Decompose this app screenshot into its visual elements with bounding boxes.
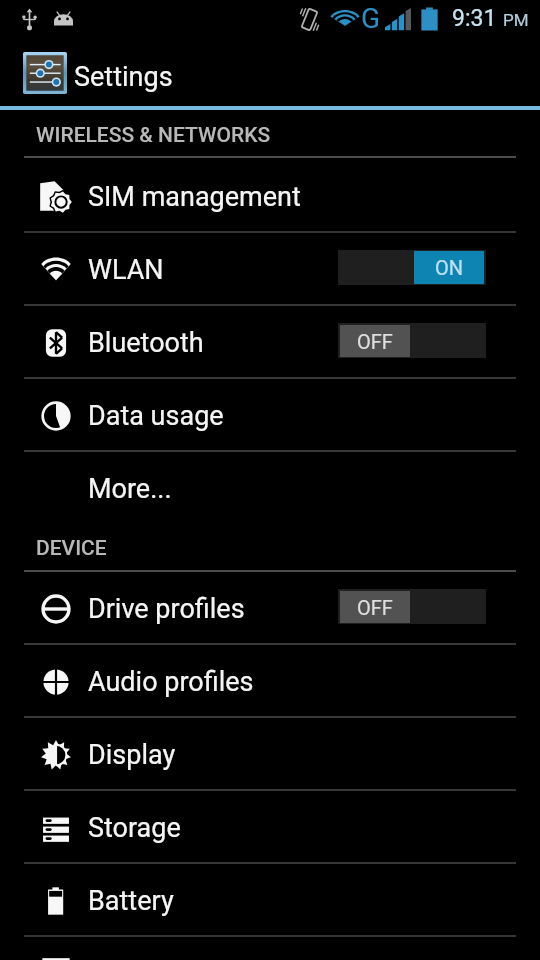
button[interactable]: More... xyxy=(0,452,540,525)
button[interactable]: Bluetooth xyxy=(0,306,540,379)
button[interactable]: Drive profiles xyxy=(0,572,540,645)
staticText: DEVICE xyxy=(36,536,107,561)
staticText: SIM management xyxy=(88,181,301,213)
button[interactable]: Display xyxy=(0,718,540,791)
other: Vibrate xyxy=(297,7,321,32)
button[interactable]: Apps xyxy=(0,937,540,960)
staticText: Drive profiles xyxy=(88,593,245,625)
staticText: Bluetooth xyxy=(88,327,204,359)
staticText: Audio profiles xyxy=(88,666,254,698)
staticText: WIRELESS & NETWORKS xyxy=(36,123,271,148)
button[interactable]: Settings xyxy=(0,38,540,106)
staticText: Settings xyxy=(74,61,173,93)
staticText: G xyxy=(361,2,381,35)
staticText: Data usage xyxy=(88,400,224,432)
button[interactable]: Storage xyxy=(0,791,540,864)
button[interactable]: Toggle on xyxy=(338,250,486,285)
staticText: WLAN xyxy=(88,254,164,286)
button[interactable]: SIM management xyxy=(0,160,540,233)
staticText: Storage xyxy=(88,812,181,844)
button[interactable]: Audio profiles xyxy=(0,645,540,718)
staticText: PM xyxy=(503,10,529,30)
other: Wi-Fi xyxy=(327,6,363,31)
staticText: OFF xyxy=(357,330,393,353)
button[interactable]: Battery xyxy=(0,864,540,937)
button[interactable]: Toggle off xyxy=(338,323,486,358)
other: Mobile signal xyxy=(385,8,411,31)
staticText: ON xyxy=(435,256,464,279)
staticText: Battery xyxy=(88,885,174,917)
staticText: Display xyxy=(88,739,176,771)
button[interactable]: Toggle off xyxy=(338,589,486,624)
staticText: 9:31 xyxy=(452,5,497,32)
other: Battery xyxy=(421,7,438,31)
staticText: OFF xyxy=(357,596,393,619)
button[interactable]: Data usage xyxy=(0,379,540,452)
staticText: More... xyxy=(88,473,172,505)
button[interactable]: WLAN xyxy=(0,233,540,306)
